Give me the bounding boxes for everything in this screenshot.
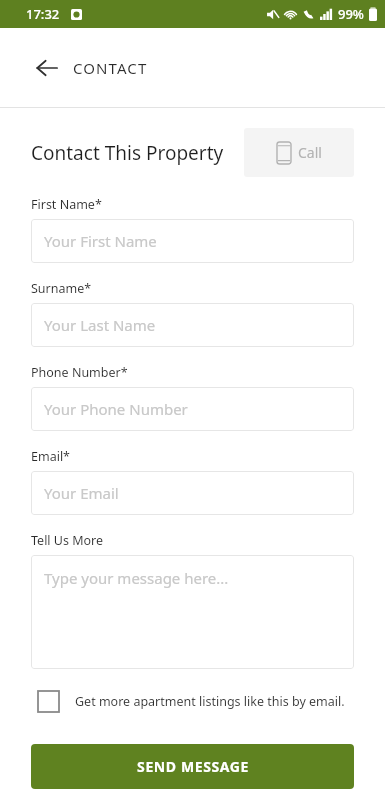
staticText: 99% [338, 5, 364, 23]
button[interactable]: Type your message here... [31, 555, 354, 669]
staticText: Phone Number* [31, 364, 128, 381]
staticText: Call [298, 143, 322, 162]
button[interactable]: Your Last Name [31, 303, 354, 347]
staticText: SEND MESSAGE [137, 757, 249, 776]
button[interactable]: SEND MESSAGE [31, 744, 354, 789]
staticText: Your Phone Number [44, 399, 188, 419]
staticText: Contact This Property [31, 140, 224, 166]
staticText: First Name* [31, 196, 102, 213]
staticText: Get more apartment listings like this by… [75, 693, 345, 710]
button[interactable]: Call [244, 128, 354, 177]
button[interactable]: Get more apartment listings like this by… [31, 686, 354, 716]
staticText: Your Last Name [44, 315, 156, 335]
button[interactable]: Your Phone Number [31, 387, 354, 431]
staticText: Type your message here... [44, 568, 229, 588]
staticText: CONTACT [73, 58, 148, 78]
staticText: Your Email [44, 483, 119, 503]
staticText: 17:32 [26, 5, 60, 23]
staticText: Your First Name [44, 231, 157, 251]
button[interactable]: Back [30, 51, 64, 85]
staticText: Email* [31, 448, 70, 465]
button[interactable]: Your First Name [31, 219, 354, 263]
staticText: Tell Us More [31, 532, 104, 549]
button[interactable]: Your Email [31, 471, 354, 515]
staticText: Surname* [31, 280, 92, 297]
